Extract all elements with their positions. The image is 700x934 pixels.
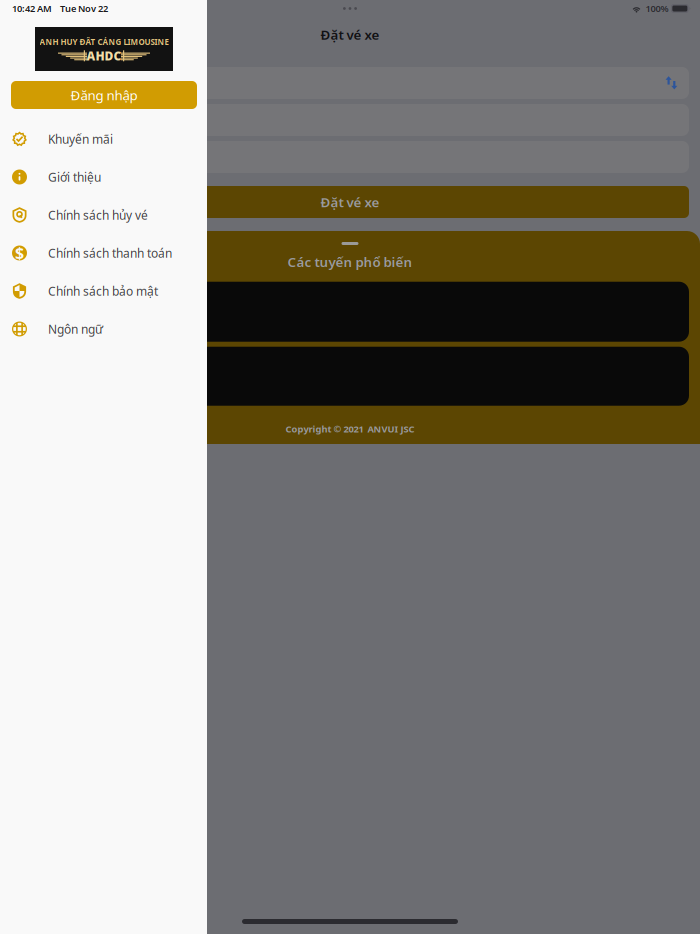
button[interactable] (11, 282, 689, 342)
staticText: Các tuyến phổ biến (287, 253, 412, 271)
staticText: Đăng nhập (70, 86, 137, 104)
staticText: Đặt vé xe (320, 193, 379, 211)
button[interactable]: Ngôn ngữ (0, 310, 207, 348)
staticText: Chính sách bảo mật (48, 283, 158, 299)
button[interactable]: Đăng nhập (11, 81, 197, 109)
staticText: AHDC (86, 48, 121, 64)
button[interactable] (11, 347, 689, 406)
staticText: Chính sách thanh toán (48, 245, 172, 261)
staticText: 100% (645, 2, 668, 15)
button[interactable]: Chính sách bảo mật (0, 272, 207, 310)
staticText: 10:42 AM (12, 2, 52, 15)
button[interactable]: $ (0, 234, 207, 272)
staticText: Copyright © 2021 ANVUI JSC (285, 423, 414, 435)
staticText: Đặt vé xe (320, 26, 379, 43)
button[interactable]: Khuyến mãi (0, 120, 207, 158)
button[interactable]: Giới thiệu (0, 158, 207, 196)
staticText: Chính sách hủy vé (48, 207, 148, 223)
staticText: Khuyến mãi (48, 131, 113, 147)
staticText: Giới thiệu (48, 169, 101, 185)
staticText: Tue Nov 22 (60, 2, 108, 15)
staticText: Ngôn ngữ (48, 321, 103, 337)
staticText: ANH HUY ĐẤT CẢNG LIMOUSINE (39, 37, 168, 47)
button[interactable]: Đặt vé xe (11, 186, 689, 218)
staticText: $ (15, 242, 24, 263)
button[interactable]: Chính sách hủy vé (0, 196, 207, 234)
